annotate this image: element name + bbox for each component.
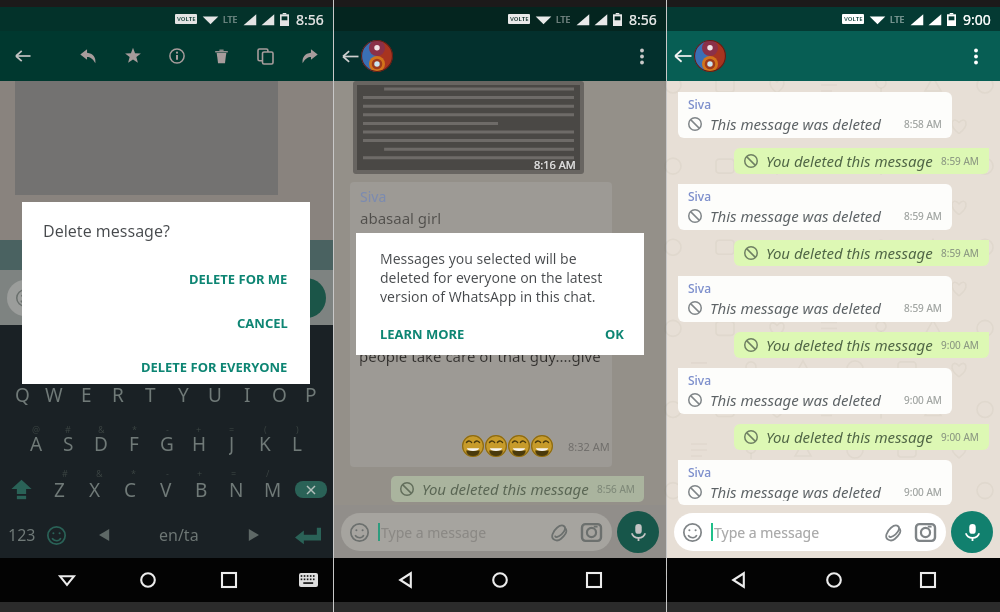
button[interactable]: 123 (8, 524, 36, 546)
button[interactable]: I (235, 382, 259, 406)
button[interactable]: Home (817, 563, 851, 597)
button[interactable]: O (267, 382, 291, 406)
staticText: Siva (688, 464, 712, 480)
button[interactable]: Reply (70, 38, 106, 74)
button[interactable]: You deleted this message (734, 148, 989, 174)
button[interactable]: T (138, 382, 162, 406)
staticText: LEARN MORE (380, 325, 465, 343)
button[interactable]: H (185, 431, 213, 455)
button[interactable]: Siva (350, 182, 612, 467)
button[interactable]: V (153, 477, 178, 501)
button[interactable]: Copy (247, 38, 283, 74)
button[interactable]: Z (47, 477, 72, 501)
button[interactable]: DELETE FOR EVERYONE (22, 351, 310, 383)
staticText: = (229, 423, 235, 435)
button[interactable]: Recents (911, 563, 945, 597)
button[interactable]: You deleted this message (734, 424, 989, 450)
button[interactable]: Next language (243, 525, 263, 545)
staticText: 8:59 AM (941, 154, 979, 168)
button[interactable]: G (153, 431, 181, 455)
button[interactable]: Siva (678, 92, 952, 138)
button[interactable]: Forward (292, 38, 328, 74)
button[interactable]: K (251, 431, 279, 455)
button[interactable]: Backspace (295, 481, 327, 498)
button[interactable]: Back (332, 38, 368, 74)
staticText: This message was deleted (710, 206, 882, 226)
button[interactable]: Contact profile (694, 40, 726, 72)
button[interactable]: Delete (203, 38, 239, 74)
button[interactable]: OK (605, 319, 624, 349)
button[interactable]: Previous language (95, 525, 115, 545)
staticText: P (305, 382, 317, 406)
staticText: 9:00 AM (904, 485, 942, 499)
button[interactable]: E (74, 382, 98, 406)
button[interactable]: L (283, 431, 311, 455)
button[interactable]: Siva (678, 368, 952, 414)
button[interactable]: Recents (212, 563, 246, 597)
button[interactable]: Message info (159, 38, 195, 74)
button[interactable]: You deleted this message (734, 240, 989, 266)
button[interactable]: More options (626, 40, 658, 72)
button[interactable]: W (42, 382, 66, 406)
button[interactable]: Siva (678, 276, 952, 322)
staticText: 123 (8, 524, 36, 546)
button[interactable]: Siva (678, 460, 952, 505)
button[interactable]: S (54, 431, 82, 455)
button[interactable]: B (189, 477, 214, 501)
button[interactable]: You deleted this message (734, 332, 989, 358)
button[interactable]: C (118, 477, 143, 501)
button[interactable]: Hide keyboard (293, 565, 323, 595)
button[interactable]: Recents (577, 563, 611, 597)
button[interactable]: Record voice message (617, 511, 659, 553)
button[interactable]: Type a message (674, 513, 946, 551)
button[interactable]: M (260, 477, 285, 501)
staticText: abasaal girl (360, 208, 442, 228)
staticText: & (96, 467, 103, 479)
button[interactable]: F (120, 431, 148, 455)
button[interactable]: Home (131, 563, 165, 597)
staticText: - (166, 467, 169, 479)
staticText: 8:32 AM (568, 439, 610, 454)
button[interactable]: Type a message (341, 513, 612, 551)
button[interactable]: Y (171, 382, 195, 406)
button[interactable]: 8:16 AM (353, 81, 584, 174)
button[interactable]: Q (10, 382, 34, 406)
staticText: LTE (556, 13, 571, 25)
staticText: @ (32, 423, 41, 435)
button[interactable]: J (218, 431, 246, 455)
button[interactable]: en/ta (159, 524, 199, 546)
button[interactable]: Contact profile (361, 40, 393, 72)
button[interactable]: A (22, 431, 50, 455)
button[interactable]: U (203, 382, 227, 406)
staticText: Z (54, 477, 65, 501)
button[interactable]: Home (483, 563, 517, 597)
staticText: Messages you selected will be deleted fo… (380, 249, 624, 306)
button[interactable]: Emoji (45, 524, 67, 546)
staticText: O (272, 382, 287, 406)
button[interactable]: P (299, 382, 323, 406)
button[interactable]: X (82, 477, 107, 501)
button[interactable]: More options (960, 40, 992, 72)
button[interactable]: Siva (678, 184, 952, 230)
staticText: 8:59 AM (904, 301, 942, 315)
staticText: 9:00 AM (904, 393, 942, 407)
button[interactable]: Record voice message (951, 511, 993, 553)
button[interactable]: You deleted this message (391, 476, 644, 502)
button[interactable]: D (87, 431, 115, 455)
button[interactable]: Back (389, 563, 423, 597)
staticText: H (192, 431, 207, 455)
button[interactable]: Back (722, 563, 756, 597)
button[interactable]: Back (5, 38, 41, 74)
staticText: C (124, 477, 137, 501)
button[interactable]: LEARN MORE (380, 319, 465, 349)
button[interactable]: Back (665, 38, 701, 74)
button[interactable]: Shift (6, 477, 36, 501)
button[interactable]: CANCEL (22, 307, 310, 339)
button[interactable]: Enter (293, 524, 323, 546)
button[interactable]: Back (50, 563, 84, 597)
staticText: This message was deleted (710, 298, 882, 318)
button[interactable]: DELETE FOR ME (22, 263, 310, 295)
button[interactable]: Star (115, 38, 151, 74)
button[interactable]: N (224, 477, 249, 501)
button[interactable]: R (106, 382, 130, 406)
